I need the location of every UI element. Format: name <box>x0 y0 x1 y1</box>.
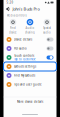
button[interactable]: Find <box>4 19 21 34</box>
staticText: sharing <box>25 31 35 34</box>
button[interactable]: Back <box>5 6 10 11</box>
staticText: Find <box>10 26 16 30</box>
button[interactable]: Find My Earbuds <box>3 71 56 80</box>
staticText: audio <box>43 31 51 34</box>
staticText: Tap to customise <box>14 57 36 61</box>
button[interactable]: Device details <box>3 35 56 44</box>
staticText: Device details <box>14 38 32 41</box>
staticText: More device details <box>17 100 43 103</box>
button[interactable]: More device details <box>17 97 43 106</box>
staticText: Earbuds settings <box>14 65 36 68</box>
staticText: Find My Earbuds <box>14 74 35 77</box>
button[interactable]: Spatial <box>38 19 55 34</box>
button[interactable]: Audio <box>21 19 38 34</box>
button[interactable]: Tips and user guide <box>3 80 56 89</box>
staticText: device <box>9 31 17 34</box>
button[interactable]: Touch controls <box>3 53 56 62</box>
staticText: 5:20 <box>6 1 13 4</box>
staticText: Audio <box>25 26 34 30</box>
button[interactable]: HD audio <box>3 44 56 53</box>
button[interactable]: Earbuds settings <box>3 62 56 71</box>
staticText: Spatial <box>43 26 51 30</box>
staticText: Touch controls <box>14 54 34 57</box>
staticText: Tips and user guide <box>14 83 42 86</box>
staticText: HD audio <box>14 47 27 50</box>
staticText: John's Buds Pro <box>12 6 39 12</box>
staticText: Media controls <box>6 14 26 17</box>
